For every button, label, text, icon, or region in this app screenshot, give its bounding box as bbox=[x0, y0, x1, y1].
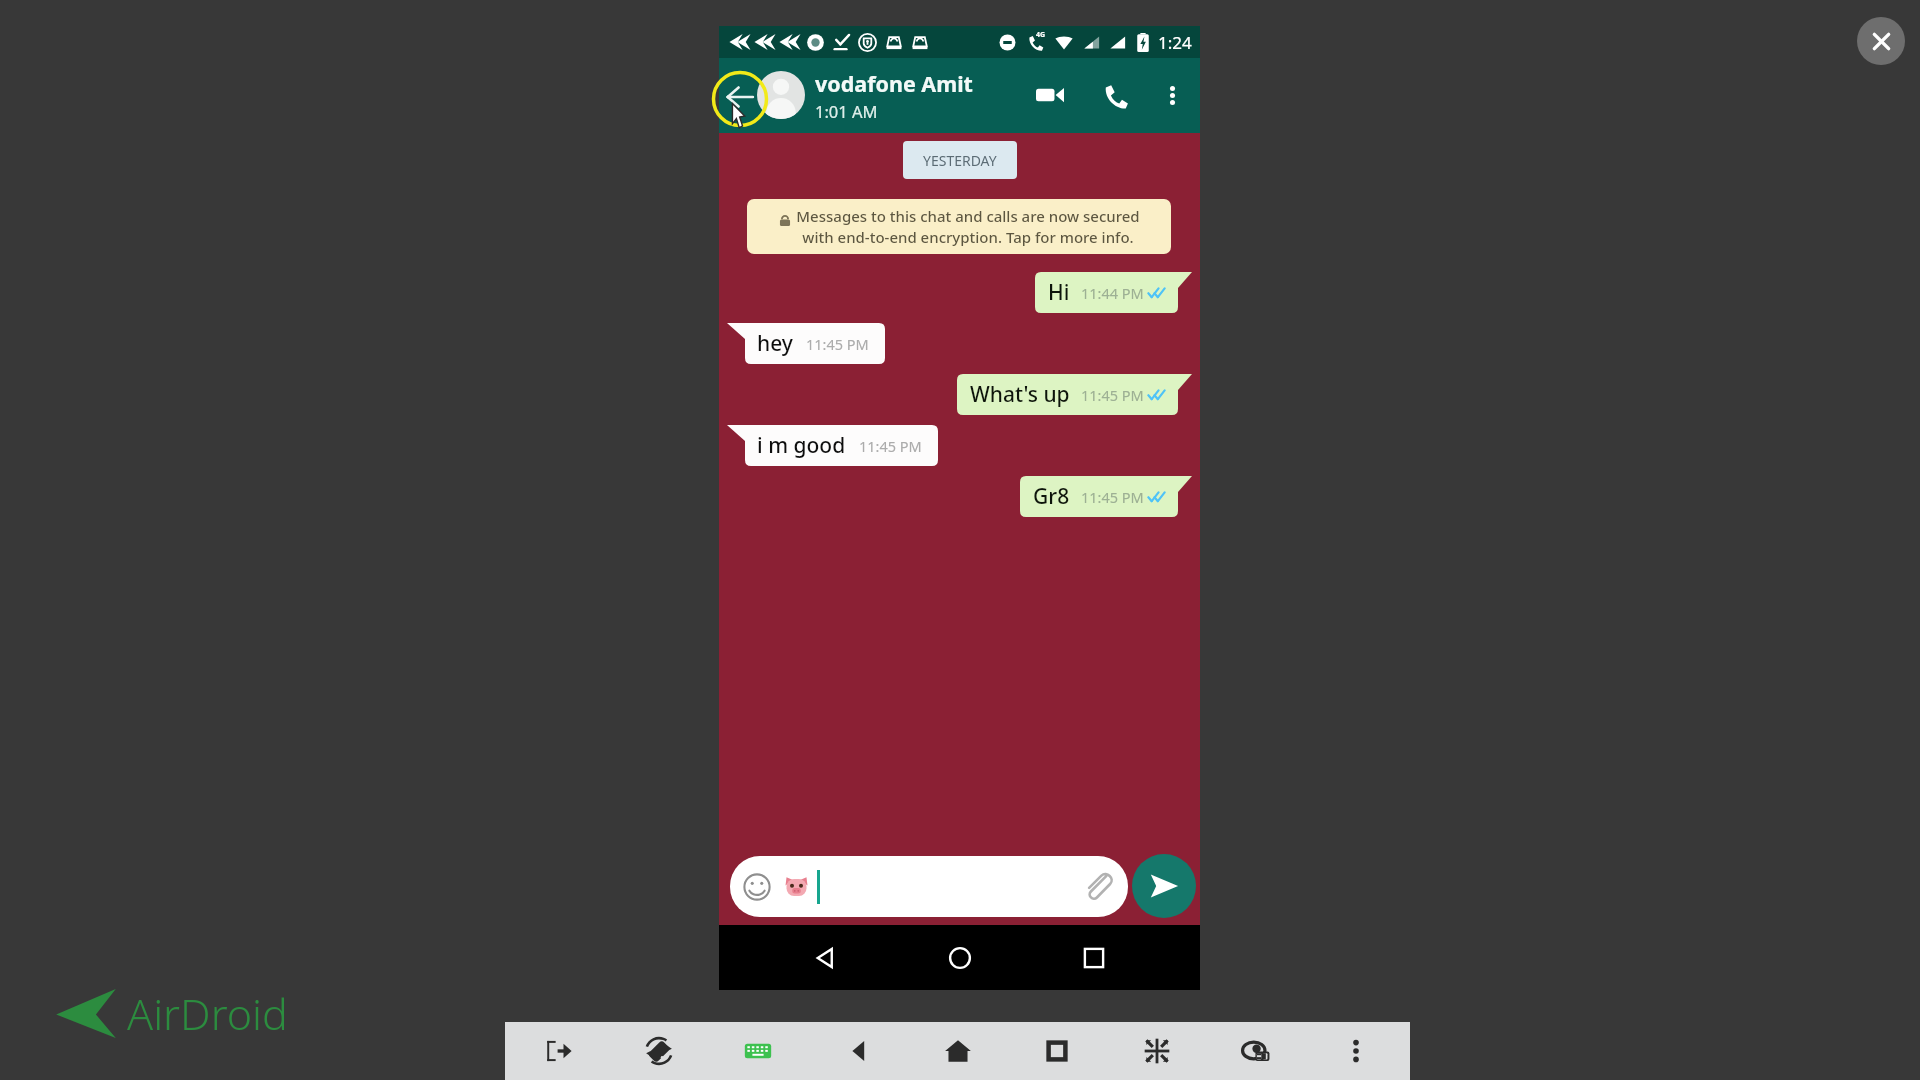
button[interactable]: Hi bbox=[1035, 272, 1192, 313]
staticText: Gr8 bbox=[1033, 482, 1070, 511]
button[interactable]: Home bbox=[932, 1025, 984, 1077]
button[interactable]: Send bbox=[1132, 854, 1196, 918]
staticText: 11:45 PM bbox=[1081, 487, 1144, 507]
button[interactable]: Video call bbox=[1027, 72, 1073, 118]
button[interactable]: Rotate bbox=[633, 1025, 685, 1077]
button[interactable]: Recents bbox=[1031, 1025, 1083, 1077]
button[interactable]: Close bbox=[1857, 17, 1905, 65]
staticText: What's up bbox=[970, 380, 1070, 409]
button[interactable]: Voice call bbox=[1092, 72, 1138, 118]
button[interactable] bbox=[730, 856, 1128, 917]
button[interactable]: Fit screen bbox=[1131, 1025, 1183, 1077]
button[interactable]: Gr8 bbox=[1020, 476, 1192, 517]
staticText: hey bbox=[757, 329, 793, 358]
button[interactable]: What's up bbox=[957, 374, 1192, 415]
staticText: 1:24 bbox=[1158, 31, 1192, 54]
staticText: vodafone Amit bbox=[815, 69, 973, 98]
staticText: 11:45 PM bbox=[1081, 385, 1144, 405]
staticText: 11:45 PM bbox=[859, 436, 922, 456]
button[interactable]: hey bbox=[727, 323, 885, 364]
button[interactable]: Back bbox=[832, 1025, 884, 1077]
staticText: i m good bbox=[757, 431, 846, 460]
staticText: 4G bbox=[1036, 30, 1046, 40]
button[interactable]: Messages to this chat and calls are now … bbox=[747, 199, 1171, 254]
button[interactable]: Back bbox=[716, 73, 764, 121]
button[interactable]: Home bbox=[932, 930, 988, 986]
button[interactable]: i m good bbox=[727, 425, 938, 466]
button[interactable]: Keyboard bbox=[732, 1025, 784, 1077]
button[interactable]: Video quality bbox=[1230, 1025, 1282, 1077]
staticText: Hi bbox=[1048, 278, 1070, 307]
button[interactable]: Back bbox=[797, 930, 853, 986]
button[interactable]: Disconnect bbox=[533, 1025, 585, 1077]
button[interactable]: Recents bbox=[1066, 930, 1122, 986]
staticText: 1:01 AM bbox=[815, 100, 878, 122]
button[interactable]: More bbox=[1330, 1025, 1382, 1077]
staticText: AirDroid bbox=[127, 984, 288, 1043]
staticText: YESTERDAY bbox=[923, 151, 997, 170]
staticText: Messages to this chat and calls are now … bbox=[796, 206, 1140, 248]
staticText: 11:45 PM bbox=[806, 334, 869, 354]
button[interactable]: More options bbox=[1151, 74, 1193, 116]
staticText: 11:44 PM bbox=[1081, 283, 1144, 303]
